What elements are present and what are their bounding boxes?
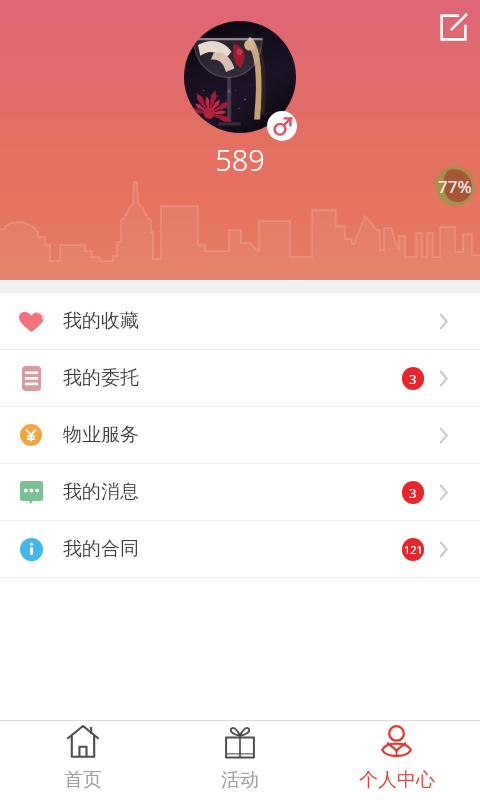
button[interactable]: Profile completion 77 percent (435, 166, 475, 206)
button[interactable]: 我的收藏 (0, 293, 480, 349)
button[interactable]: 个人中心 (318, 721, 475, 800)
button[interactable]: 我的委托 (0, 350, 480, 406)
staticText: 77% (438, 175, 472, 198)
staticText: 121 (404, 542, 423, 557)
button[interactable]: Profile photo (184, 21, 296, 133)
button[interactable]: Edit profile (429, 3, 477, 51)
staticText: 活动 (221, 768, 259, 792)
button[interactable]: 物业服务 (0, 407, 480, 463)
staticText: 我的委托 (63, 366, 139, 390)
staticText: 我的合同 (63, 537, 139, 561)
button[interactable]: 活动 (161, 721, 318, 800)
staticText: 首页 (64, 768, 102, 792)
staticText: 589 (0, 140, 480, 179)
button[interactable]: 首页 (5, 721, 161, 800)
staticText: 3 (409, 370, 417, 388)
button[interactable]: 我的合同 (0, 521, 480, 577)
staticText: 个人中心 (359, 768, 435, 792)
staticText: 3 (409, 484, 417, 502)
staticText: 物业服务 (63, 423, 139, 447)
staticText: 我的消息 (63, 480, 139, 504)
button[interactable]: 我的消息 (0, 464, 480, 520)
staticText: 我的收藏 (63, 309, 139, 333)
